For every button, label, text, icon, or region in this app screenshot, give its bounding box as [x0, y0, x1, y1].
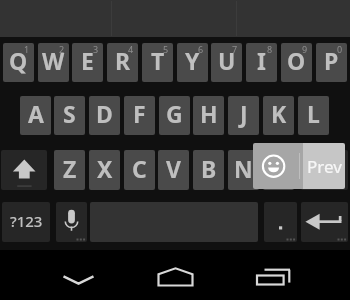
staticText: V — [166, 153, 181, 184]
button[interactable]: Recents — [249, 262, 298, 290]
staticText: K — [271, 98, 287, 129]
staticText: U — [218, 45, 236, 76]
staticText: 2 — [59, 43, 65, 55]
button[interactable]: M — [263, 150, 294, 190]
staticText: 5 — [163, 43, 169, 55]
button[interactable]: Z — [54, 150, 85, 190]
button[interactable]: J — [228, 96, 259, 135]
button[interactable]: W — [38, 43, 69, 82]
button[interactable]: E — [72, 43, 103, 82]
button[interactable]: T — [142, 43, 173, 82]
staticText: A — [28, 98, 44, 129]
staticText: P — [324, 45, 339, 76]
button[interactable]: A — [20, 96, 51, 135]
button[interactable]: Home — [151, 262, 200, 290]
staticText: 6 — [198, 43, 204, 55]
button[interactable]: V — [158, 150, 189, 190]
button[interactable]: C — [124, 150, 155, 190]
button[interactable]: ?123 — [2, 202, 50, 242]
button[interactable]: X — [89, 150, 120, 190]
staticText: 7 — [232, 43, 238, 55]
staticText: 1 — [24, 43, 30, 55]
staticText: T — [151, 45, 165, 76]
staticText: J — [240, 98, 248, 129]
button[interactable]: Enter — [301, 202, 348, 242]
button[interactable]: I — [246, 43, 277, 82]
button[interactable]: Y — [177, 43, 208, 82]
button[interactable]: G — [159, 96, 190, 135]
button[interactable]: N — [228, 150, 259, 190]
staticText: X — [97, 153, 113, 184]
button[interactable]: S — [54, 96, 85, 135]
staticText: E — [81, 45, 94, 76]
staticText: W — [42, 45, 65, 76]
button[interactable]: Q — [3, 43, 34, 82]
button[interactable]: Emoji — [253, 143, 299, 189]
button[interactable]: B — [193, 150, 224, 190]
button[interactable]: P — [316, 43, 347, 82]
staticText: 3 — [93, 43, 99, 55]
button[interactable]: U — [211, 43, 242, 82]
staticText: Q — [9, 45, 28, 76]
staticText: 9 — [302, 43, 308, 55]
button[interactable]: Back — [54, 264, 103, 290]
staticText: R — [115, 45, 131, 76]
staticText: G — [166, 98, 183, 129]
staticText: L — [307, 98, 320, 129]
staticText: Prev — [307, 155, 342, 178]
button[interactable]: F — [124, 96, 155, 135]
staticText: S — [63, 98, 76, 129]
staticText: D — [96, 98, 113, 129]
staticText: H — [200, 98, 218, 129]
staticText: M — [268, 153, 290, 184]
staticText: C — [132, 153, 147, 184]
button[interactable]: Voice input — [56, 202, 87, 242]
staticText: B — [201, 153, 217, 184]
button[interactable]: K — [263, 96, 294, 135]
button[interactable]: L — [298, 96, 329, 135]
button[interactable]: R — [107, 43, 138, 82]
staticText: F — [133, 98, 146, 129]
button[interactable]: H — [193, 96, 224, 135]
staticText: I — [257, 45, 266, 76]
button[interactable]: Prev — [303, 143, 345, 189]
staticText: Z — [63, 153, 77, 184]
staticText: ?123 — [10, 211, 43, 231]
staticText: Y — [185, 45, 200, 76]
staticText: 0 — [337, 43, 343, 55]
staticText: 4 — [128, 43, 134, 55]
staticText: N — [234, 153, 253, 184]
button[interactable]: D — [89, 96, 120, 135]
button[interactable]: Period — [264, 202, 297, 242]
button[interactable]: O — [281, 43, 312, 82]
staticText: O — [287, 45, 306, 76]
button[interactable]: Shift — [1, 150, 47, 190]
staticText: 8 — [267, 43, 273, 55]
button[interactable]: Backspace — [301, 150, 348, 190]
